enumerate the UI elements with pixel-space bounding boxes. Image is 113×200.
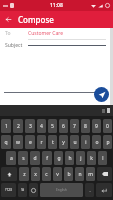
staticText: Subject <box>5 42 28 49</box>
button[interactable]: e <box>25 135 35 149</box>
staticText: o <box>95 139 99 146</box>
button[interactable]: Enter <box>96 183 112 197</box>
button[interactable]: r <box>37 135 46 149</box>
staticText: x <box>34 171 37 178</box>
staticText: j <box>80 155 82 162</box>
button[interactable]: z <box>19 167 29 181</box>
button[interactable]: s <box>18 151 28 165</box>
button[interactable]: f <box>42 151 52 165</box>
staticText: h <box>68 155 72 162</box>
button[interactable]: 1 <box>1 119 11 133</box>
button[interactable]: k <box>87 151 96 165</box>
button[interactable]: a <box>6 151 16 165</box>
button[interactable]: o <box>92 135 101 149</box>
button[interactable]: h <box>65 151 74 165</box>
button[interactable]: 8 <box>81 119 90 133</box>
staticText: Compose <box>18 14 54 25</box>
staticText: a <box>10 155 13 162</box>
staticText: z <box>23 171 26 178</box>
staticText: p <box>106 139 110 146</box>
staticText: m <box>88 171 93 178</box>
button[interactable]: x <box>31 167 40 181</box>
staticText: s <box>22 155 25 162</box>
staticText: r <box>40 139 43 146</box>
staticText: u <box>73 139 77 146</box>
staticText: l <box>102 155 104 162</box>
button[interactable]: p <box>103 135 112 149</box>
button[interactable]: . <box>85 183 94 197</box>
staticText: t <box>52 139 54 146</box>
button[interactable]: i <box>81 135 90 149</box>
button[interactable]: j <box>76 151 85 165</box>
button[interactable]: 2 <box>13 119 23 133</box>
staticText: n <box>78 171 82 178</box>
staticText: ?123 <box>5 188 12 192</box>
button[interactable]: Subject <box>0 40 110 51</box>
staticText: i <box>85 139 87 146</box>
button[interactable]: Back <box>2 13 15 26</box>
staticText: 6 <box>62 123 65 130</box>
button[interactable]: Backspace <box>97 167 112 181</box>
button[interactable] <box>0 51 110 92</box>
button[interactable]: l <box>98 151 107 165</box>
button[interactable]: 6 <box>59 119 68 133</box>
button[interactable]: y <box>59 135 68 149</box>
staticText: 7 <box>73 123 76 130</box>
button[interactable]: c <box>42 167 51 181</box>
button[interactable]: n <box>75 167 84 181</box>
button[interactable]: 4 <box>37 119 46 133</box>
button[interactable]: 3 <box>25 119 35 133</box>
button[interactable]: w <box>13 135 23 149</box>
staticText: 2 <box>17 123 20 130</box>
staticText: Customer Care <box>28 30 64 37</box>
button[interactable]: 5 <box>48 119 57 133</box>
staticText: 0 <box>106 123 109 130</box>
button[interactable]: Emoji <box>29 183 38 197</box>
button[interactable]: Send <box>94 87 109 102</box>
button[interactable]: !# <box>18 183 27 197</box>
staticText: !# <box>21 188 24 192</box>
staticText: b <box>67 171 71 178</box>
button[interactable]: ?123 <box>1 183 16 197</box>
staticText: y <box>62 139 65 146</box>
staticText: q <box>4 139 8 146</box>
button[interactable]: t <box>48 135 57 149</box>
staticText: c <box>45 171 48 178</box>
staticText: v <box>56 171 59 178</box>
staticText: 5 <box>51 123 54 130</box>
button[interactable]: 7 <box>70 119 79 133</box>
button[interactable]: 9 <box>92 119 101 133</box>
staticText: e <box>29 139 32 146</box>
staticText: g <box>57 155 61 162</box>
staticText: w <box>16 139 20 146</box>
staticText: English <box>56 188 67 192</box>
button[interactable]: u <box>70 135 79 149</box>
button[interactable]: d <box>30 151 40 165</box>
button[interactable]: g <box>54 151 63 165</box>
staticText: 11:08 <box>50 2 63 9</box>
button[interactable]: b <box>64 167 73 181</box>
staticText: k <box>90 155 93 162</box>
button[interactable]: Shift <box>1 167 17 181</box>
staticText: 3 <box>29 123 32 130</box>
button[interactable]: m <box>86 167 95 181</box>
staticText: 9 <box>95 123 98 130</box>
staticText: d <box>33 155 37 162</box>
staticText: 1 <box>5 123 8 130</box>
button[interactable]: v <box>53 167 62 181</box>
staticText: 8 <box>84 123 87 130</box>
button[interactable]: 0 <box>103 119 112 133</box>
button[interactable]: To <box>0 28 110 39</box>
staticText: 4 <box>40 123 43 130</box>
button[interactable]: q <box>1 135 11 149</box>
staticText: . <box>89 188 91 193</box>
button[interactable]: Space <box>40 183 83 197</box>
staticText: To <box>5 30 28 37</box>
staticText: f <box>46 155 48 162</box>
